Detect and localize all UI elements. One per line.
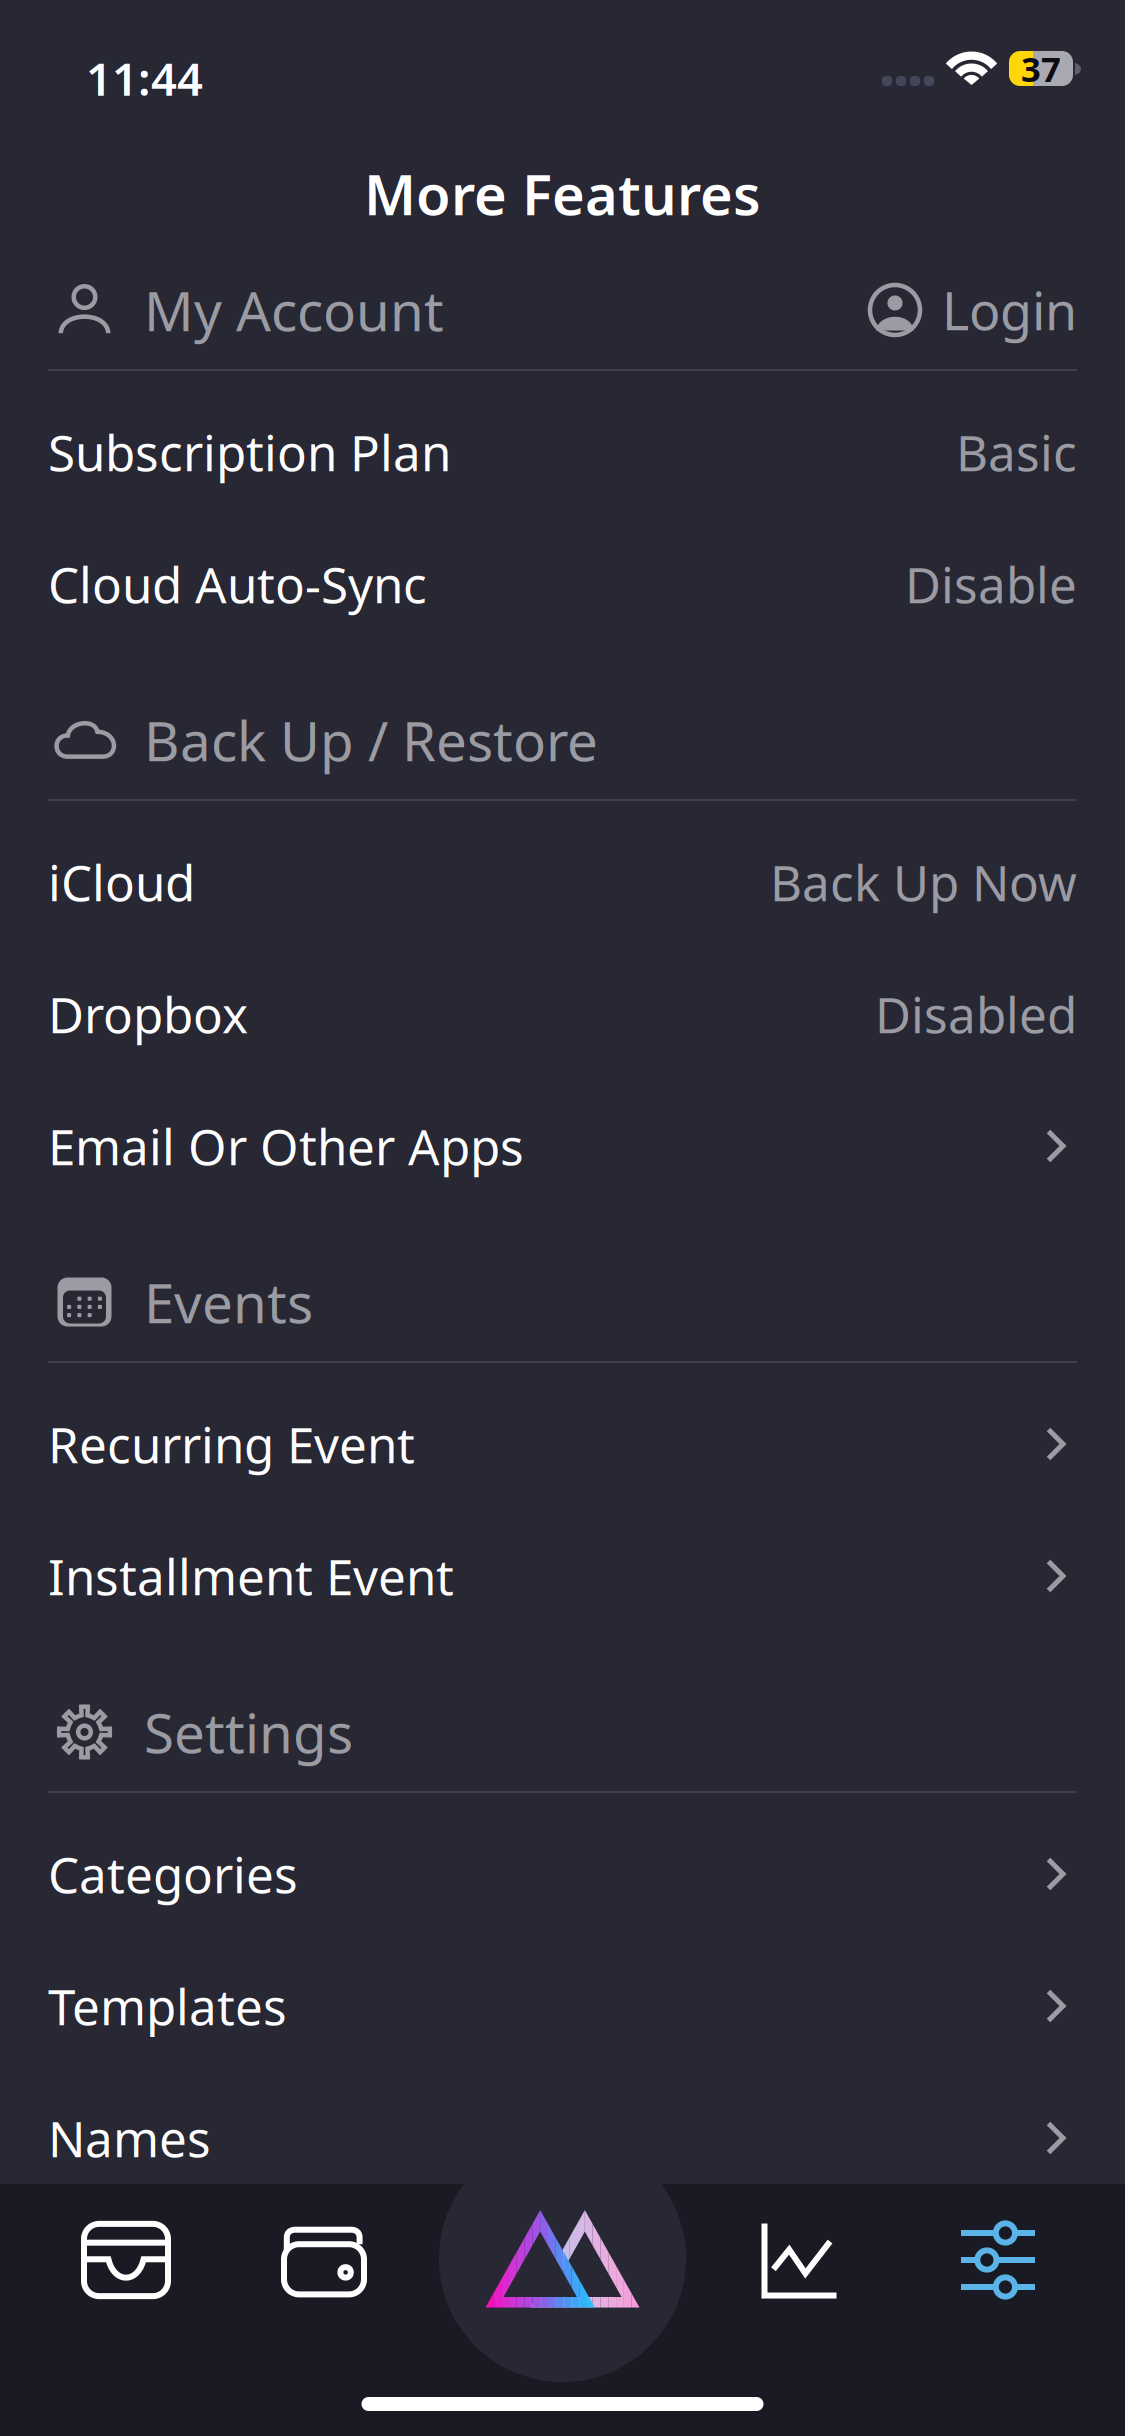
staticText: More Features bbox=[364, 156, 761, 231]
button[interactable]: Login bbox=[868, 261, 1077, 359]
button[interactable]: Email Or Other Apps bbox=[0, 1080, 1125, 1212]
button[interactable]: Templates bbox=[0, 1940, 1125, 2072]
button[interactable]: Cloud Auto-Sync bbox=[0, 518, 1125, 650]
button[interactable]: Reports bbox=[705, 2184, 895, 2336]
staticText: Basic bbox=[956, 419, 1077, 485]
button[interactable]: iCloud bbox=[0, 816, 1125, 948]
staticText: Back Up / Restore bbox=[144, 704, 598, 776]
button[interactable]: Categories bbox=[0, 1808, 1125, 1940]
staticText: Disable bbox=[905, 551, 1077, 617]
staticText: Recurring Event bbox=[48, 1411, 415, 1477]
staticText: Dropbox bbox=[48, 981, 248, 1047]
button[interactable]: Subscription Plan bbox=[0, 386, 1125, 518]
staticText: Installment Event bbox=[48, 1543, 454, 1609]
staticText: Cloud Auto-Sync bbox=[48, 551, 427, 617]
staticText: Templates bbox=[48, 1973, 287, 2039]
staticText: Categories bbox=[48, 1841, 298, 1907]
button[interactable]: Records bbox=[31, 2184, 221, 2336]
button[interactable]: Recurring Event bbox=[0, 1378, 1125, 1510]
staticText: 11:44 bbox=[86, 48, 203, 108]
button[interactable]: Installment Event bbox=[0, 1510, 1125, 1642]
button[interactable]: Dropbox bbox=[0, 948, 1125, 1080]
staticText: Events bbox=[144, 1266, 313, 1338]
button[interactable]: More bbox=[903, 2184, 1093, 2336]
staticText: Names bbox=[48, 2105, 211, 2171]
staticText: Settings bbox=[144, 1696, 353, 1768]
button[interactable]: Accounts bbox=[229, 2184, 419, 2336]
staticText: My Account bbox=[144, 274, 444, 346]
button[interactable]: Names bbox=[0, 2072, 1125, 2204]
staticText: Subscription Plan bbox=[48, 419, 451, 485]
staticText: Email Or Other Apps bbox=[48, 1113, 524, 1179]
staticText: Disabled bbox=[875, 981, 1077, 1047]
button[interactable]: Add entry bbox=[439, 2135, 686, 2382]
staticText: iCloud bbox=[48, 849, 195, 915]
staticText: Login bbox=[942, 275, 1077, 345]
staticText: Back Up Now bbox=[770, 849, 1077, 915]
staticText: 37 bbox=[1021, 45, 1061, 91]
